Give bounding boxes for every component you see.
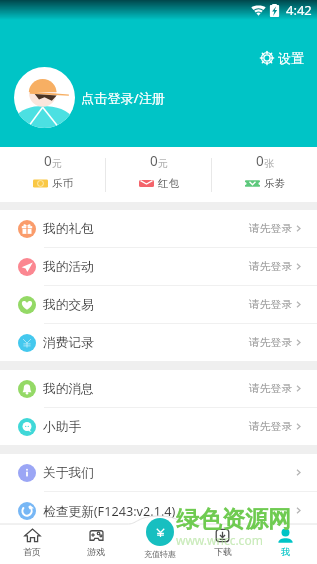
staticText: 下载 (214, 546, 232, 557)
staticText: 首页 (23, 546, 41, 557)
button[interactable]: 游戏 (64, 523, 128, 557)
staticText: 张 (264, 157, 274, 170)
staticText: 元 (158, 157, 168, 170)
button[interactable]: 我 (254, 523, 317, 557)
button[interactable]: 我的交易 (0, 286, 317, 323)
button[interactable]: 0 (212, 147, 317, 190)
staticText: 我的礼包 (43, 221, 94, 237)
staticText: 我的消息 (43, 381, 94, 397)
staticText: 请先登录 (249, 420, 293, 434)
staticText: 红包 (158, 177, 179, 190)
button[interactable]: 我的活动 (0, 248, 317, 285)
button[interactable]: 首页 (0, 523, 64, 557)
staticText: 0 (150, 152, 158, 170)
staticText: 设置 (278, 50, 304, 66)
staticText: 0 (256, 152, 264, 170)
staticText: 元 (52, 157, 62, 170)
staticText: 点击登录/注册 (81, 89, 166, 107)
staticText: 乐币 (52, 177, 73, 190)
staticText: www.wncc.com (176, 532, 263, 548)
staticText: 关于我们 (43, 465, 94, 481)
button[interactable]: 小助手 (0, 408, 317, 445)
button[interactable]: 我的礼包 (0, 210, 317, 247)
button[interactable]: 我的消息 (0, 370, 317, 407)
staticText: 检查更新(F1243:v2.1.4) (43, 502, 176, 519)
staticText: 游戏 (87, 546, 105, 557)
staticText: 消费记录 (43, 335, 94, 351)
button[interactable]: 充值特惠 (128, 523, 191, 561)
staticText: 我的活动 (43, 259, 94, 275)
button[interactable]: 关于我们 (0, 454, 317, 491)
staticText: 我的交易 (43, 297, 94, 313)
button[interactable]: 消费记录 (0, 324, 317, 361)
staticText: 乐劵 (264, 177, 285, 190)
button[interactable]: 点击登录/注册 (14, 67, 166, 128)
button[interactable]: 检查更新(F1243:v2.1.4) (0, 492, 317, 529)
staticText: 请先登录 (249, 298, 293, 312)
staticText: 我 (281, 546, 290, 557)
staticText: 请先登录 (249, 382, 293, 396)
staticText: 绿色资源网 (176, 505, 291, 534)
staticText: 请先登录 (249, 260, 293, 274)
staticText: 请先登录 (249, 222, 293, 236)
staticText: 0 (44, 152, 52, 170)
staticText: 4:42 (286, 1, 312, 19)
button[interactable]: 0 (0, 147, 105, 190)
button[interactable]: 设置 (256, 46, 308, 70)
button[interactable]: 0 (106, 147, 211, 190)
staticText: 充值特惠 (144, 549, 176, 559)
staticText: 请先登录 (249, 336, 293, 350)
staticText: 小助手 (43, 419, 82, 435)
button[interactable]: 下载 (191, 523, 254, 557)
